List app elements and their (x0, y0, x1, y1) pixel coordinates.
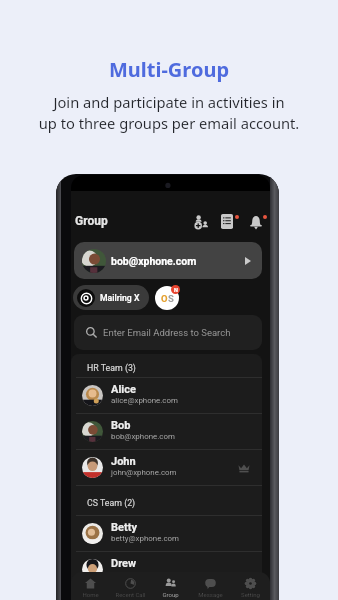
button[interactable]: Group (150, 572, 190, 600)
staticText: Setting (241, 591, 260, 598)
staticText: Message (198, 591, 223, 598)
button[interactable]: Recent Call (110, 572, 150, 600)
staticText: Recent Call (115, 591, 146, 598)
button[interactable]: bob@xphone.com (74, 242, 262, 279)
staticText: Betty (111, 521, 137, 534)
button[interactable]: O (155, 285, 181, 310)
staticText: N (174, 287, 178, 293)
button[interactable]: Message (190, 572, 230, 600)
staticText: drew@xphone.com (111, 570, 179, 579)
button[interactable]: Betty (71, 516, 262, 551)
staticText: Home (82, 591, 99, 598)
staticText: CS Team (2) (87, 498, 136, 508)
staticText: john@xphone.com (111, 468, 177, 477)
staticText: Group (75, 214, 108, 228)
button[interactable]: Setting (230, 572, 270, 600)
button[interactable]: Group (71, 210, 112, 232)
button[interactable]: Mailring X (73, 285, 149, 310)
button[interactable]: Alice (71, 378, 262, 413)
button[interactable]: Add member (190, 210, 212, 232)
staticText: Alice (111, 383, 136, 396)
button[interactable]: Bob (71, 414, 262, 449)
staticText: S (168, 293, 174, 304)
staticText: HR Team (3) (87, 363, 136, 373)
staticText: Drew (111, 557, 137, 570)
button[interactable]: Home (71, 572, 110, 600)
button[interactable]: Requests (216, 210, 238, 232)
staticText: betty@xphone.com (111, 534, 179, 543)
staticText: bob@xphone.com (111, 255, 197, 267)
button[interactable]: Drew (71, 552, 262, 587)
button[interactable]: Notifications (244, 210, 266, 232)
button[interactable]: Enter Email Address to Search (74, 315, 262, 350)
staticText: Mailring X (100, 293, 140, 303)
staticText: Enter Email Address to Search (103, 327, 231, 338)
button[interactable]: John (71, 450, 262, 485)
staticText: Group (162, 591, 179, 598)
staticText: Join and participate in activities in up… (0, 92, 338, 134)
staticText: Multi-Group (0, 56, 338, 83)
staticText: Bob (111, 419, 131, 432)
staticText: alice@xphone.com (111, 396, 178, 405)
staticText: bob@xphone.com (111, 432, 175, 441)
staticText: O (161, 293, 168, 304)
staticText: John (111, 455, 136, 468)
